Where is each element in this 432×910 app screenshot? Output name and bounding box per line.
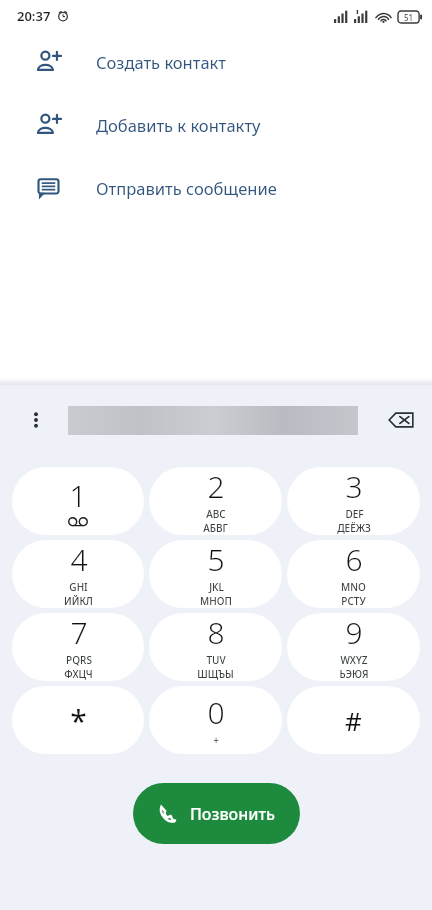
staticText: ФХЦЧ xyxy=(64,667,93,680)
staticText: GHI xyxy=(69,580,88,594)
button[interactable]: 9 xyxy=(287,613,420,681)
button[interactable]: Удалить xyxy=(378,397,424,443)
staticText: 20:37 xyxy=(17,7,51,25)
staticText: DEF xyxy=(345,507,364,521)
button[interactable]: Позвонить xyxy=(133,783,300,844)
button[interactable]: 3 xyxy=(287,467,420,535)
staticText: JKL xyxy=(209,580,224,594)
staticText: Создать контакт xyxy=(96,51,227,73)
button[interactable]: * xyxy=(12,686,144,754)
staticText: РСТУ xyxy=(341,594,366,607)
button[interactable]: Дополнительно xyxy=(14,398,58,442)
button[interactable]: 7 xyxy=(12,613,144,681)
staticText: 6 xyxy=(345,540,363,580)
staticText: ABC xyxy=(206,507,226,521)
staticText: 2 xyxy=(207,467,225,507)
button[interactable]: Отправить сообщение xyxy=(0,168,432,208)
staticText: MNO xyxy=(341,580,366,594)
button[interactable]: 5 xyxy=(149,540,282,608)
staticText: 4 xyxy=(70,540,88,580)
staticText: WXYZ xyxy=(340,653,368,667)
staticText: 5 xyxy=(207,540,225,580)
staticText: 51 xyxy=(404,12,414,23)
button[interactable]: 2 xyxy=(149,467,282,535)
button[interactable]: Создать контакт xyxy=(0,42,432,82)
staticText: Добавить к контакту xyxy=(96,114,261,136)
staticText: 9 xyxy=(345,613,363,653)
button[interactable]: 8 xyxy=(149,613,282,681)
staticText: # xyxy=(345,703,362,738)
button[interactable]: # xyxy=(287,686,420,754)
staticText: Позвонить xyxy=(190,803,276,825)
staticText: ДЕЁЖЗ xyxy=(337,521,371,534)
staticText: + xyxy=(213,733,219,747)
staticText: АБВГ xyxy=(203,521,228,534)
staticText: 7 xyxy=(70,613,88,653)
button[interactable]: Добавить к контакту xyxy=(0,105,432,145)
staticText: ЬЭЮЯ xyxy=(339,667,369,680)
button[interactable] xyxy=(68,406,358,435)
staticText: 0 xyxy=(207,692,225,733)
staticText: ИЙКЛ xyxy=(64,594,93,607)
button[interactable]: 4 xyxy=(12,540,144,608)
button[interactable]: 6 xyxy=(287,540,420,608)
staticText: * xyxy=(70,700,87,741)
staticText: Отправить сообщение xyxy=(96,177,277,199)
staticText: 3 xyxy=(345,467,363,507)
button[interactable]: 1 xyxy=(12,467,144,535)
staticText: 1 xyxy=(69,475,87,516)
staticText: 8 xyxy=(207,613,225,653)
button[interactable]: 0 xyxy=(149,686,282,754)
staticText: TUV xyxy=(206,653,226,667)
staticText: ШЩЪЫ xyxy=(197,667,234,680)
staticText: PQRS xyxy=(66,653,92,667)
staticText: МНОП xyxy=(200,594,232,607)
